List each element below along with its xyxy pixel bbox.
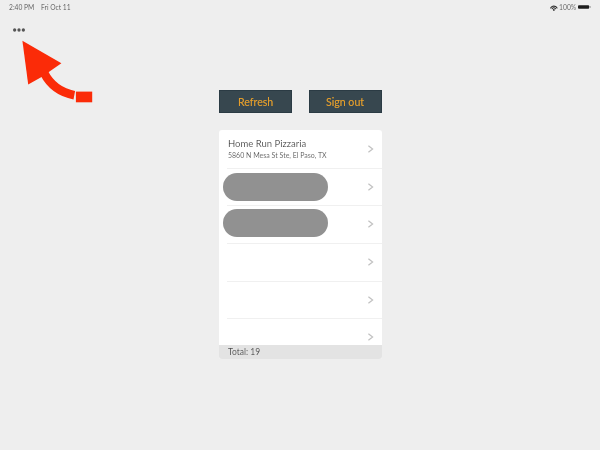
staticText: 100% — [559, 3, 577, 11]
staticText: Fri Oct 11 — [41, 3, 71, 11]
staticText: 2:40 PM — [9, 3, 35, 11]
staticText: Total: 19 — [228, 347, 261, 357]
staticText: Refresh — [238, 96, 274, 109]
staticText: Home Run Pizzaria — [228, 138, 307, 149]
button[interactable]: Home Run Pizzaria — [219, 130, 382, 168]
button[interactable] — [219, 281, 382, 319]
staticText: 5860 N Mesa St Ste, El Paso, TX — [228, 151, 327, 159]
button[interactable]: More options — [8, 23, 30, 37]
button[interactable] — [219, 318, 382, 345]
other: Annotation arrow pointing at the overflo… — [20, 38, 94, 106]
button[interactable]: Refresh — [219, 90, 292, 113]
button[interactable] — [219, 205, 382, 243]
button[interactable] — [219, 168, 382, 206]
staticText: Sign out — [326, 96, 365, 109]
button[interactable]: Sign out — [309, 90, 382, 113]
button[interactable] — [219, 243, 382, 281]
